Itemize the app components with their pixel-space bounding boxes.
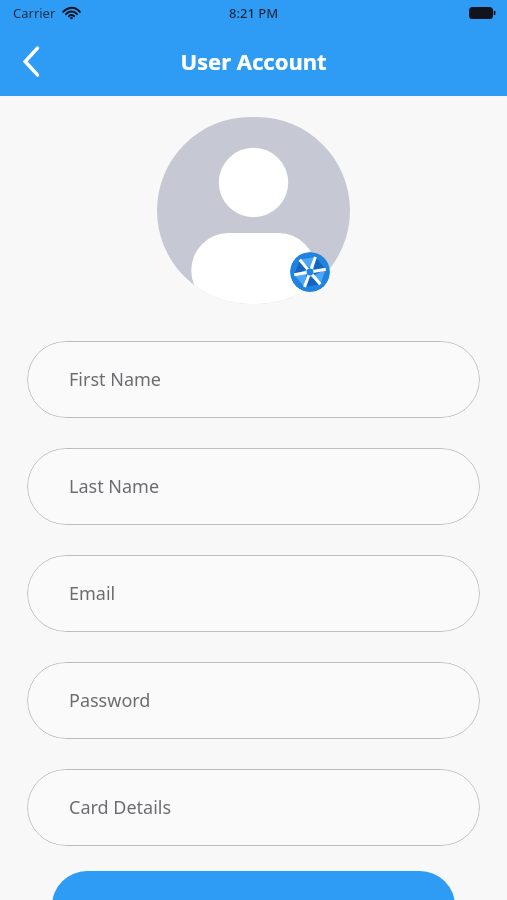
button[interactable]: Profile photo (157, 117, 350, 304)
staticText: First Name (69, 367, 161, 392)
staticText: User Account (180, 46, 327, 76)
staticText: Password (69, 688, 151, 713)
staticText: Carrier (13, 4, 56, 22)
button[interactable]: Password (27, 662, 480, 739)
button[interactable]: Back (6, 36, 56, 86)
button[interactable]: First Name (27, 341, 480, 418)
button[interactable]: Card Details (27, 769, 480, 846)
staticText: Email (69, 581, 116, 606)
button[interactable] (52, 871, 455, 900)
staticText: 8:21 PM (229, 4, 279, 22)
button[interactable]: Change photo (290, 252, 330, 292)
button[interactable]: Last Name (27, 448, 480, 525)
button[interactable]: Email (27, 555, 480, 632)
staticText: Card Details (69, 795, 172, 820)
staticText: Last Name (69, 474, 160, 499)
